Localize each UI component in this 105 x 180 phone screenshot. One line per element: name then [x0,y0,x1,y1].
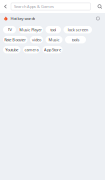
button[interactable]: TV [3,26,16,33]
button[interactable]: Rate Booster [3,36,27,43]
staticText: video [32,37,41,42]
button[interactable]: App Store [42,46,62,53]
button[interactable]: tools [65,36,86,43]
button[interactable]: Refresh keywords [96,16,100,21]
button[interactable]: Music Player [18,26,43,33]
button[interactable]: Search [94,0,105,13]
button[interactable]: video [30,36,43,43]
staticText: tools [71,37,79,42]
staticText: tool [50,27,56,32]
button[interactable]: Back [0,0,11,13]
staticText: TV [7,27,11,32]
staticText: Music [48,37,59,42]
staticText: Youtube [5,47,18,52]
staticText: Rate Booster [4,37,26,42]
staticText: camera [24,47,38,52]
staticText: Hot key words [10,16,35,21]
staticText: lock screen [68,27,88,32]
button[interactable]: tool [45,26,61,33]
staticText: Search Apps & Games [14,4,54,9]
button[interactable]: lock screen [63,26,92,33]
button[interactable]: Music [45,36,62,43]
button[interactable]: Youtube [3,46,20,53]
button[interactable]: camera [23,46,40,53]
staticText: App Store [44,47,61,52]
staticText: Music Player [19,27,42,32]
